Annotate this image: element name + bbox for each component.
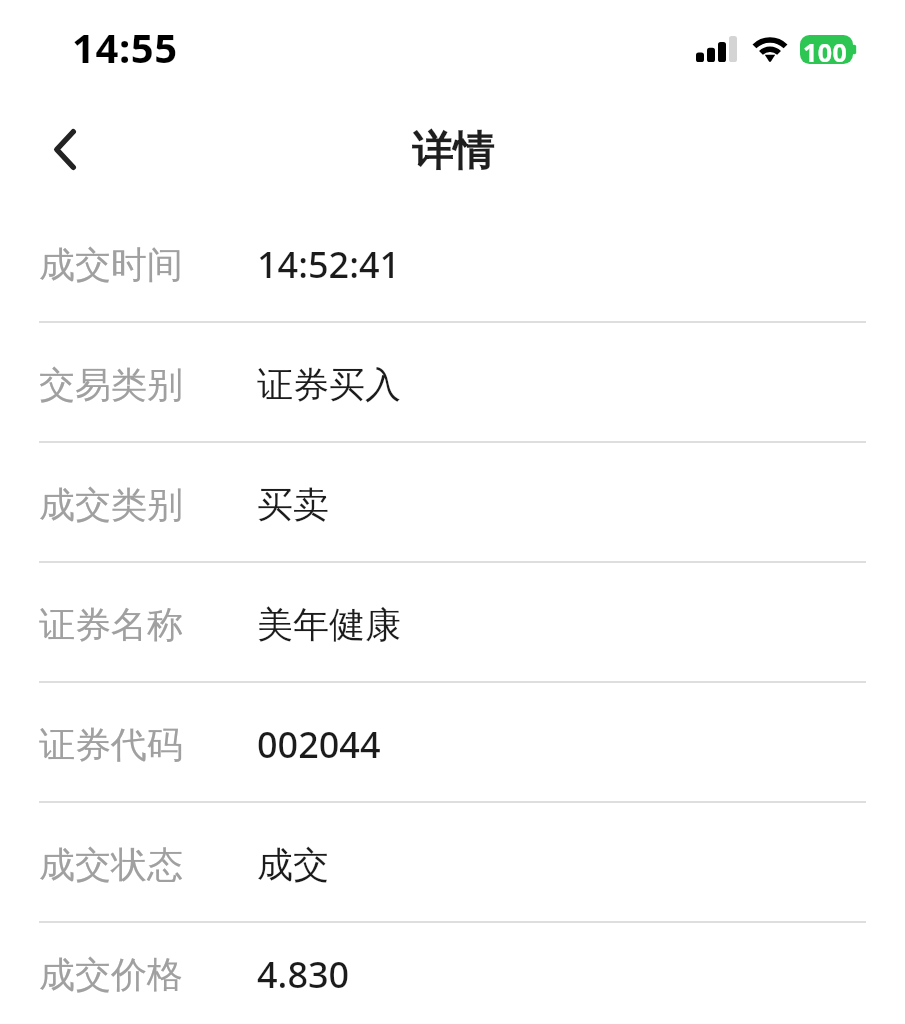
button[interactable]: 成交时间 [0,203,905,323]
staticText: 证券买入 [257,362,401,407]
staticText: 成交 [257,842,329,887]
staticText: 证券代码 [39,722,183,767]
button[interactable]: 证券代码 [0,683,905,803]
staticText: 4.830 [257,950,350,999]
button[interactable]: 证券名称 [0,563,905,683]
staticText: 成交时间 [39,242,183,287]
staticText: 成交价格 [39,952,183,997]
button[interactable]: 成交价格 [0,923,905,1024]
staticText: 100 [803,35,848,64]
staticText: 交易类别 [39,362,183,407]
button[interactable]: 交易类别 [0,323,905,443]
staticText: 成交类别 [39,482,183,527]
staticText: 14:55 [72,20,178,74]
staticText: 002044 [257,720,381,769]
button[interactable]: 成交类别 [0,443,905,563]
staticText: 证券名称 [39,602,183,647]
button[interactable]: 成交状态 [0,803,905,923]
staticText: 成交状态 [39,842,183,887]
staticText: 美年健康 [257,602,401,647]
staticText: 详情 [412,126,494,178]
button[interactable]: Back [27,112,103,190]
staticText: 买卖 [257,482,329,527]
staticText: 14:52:41 [257,240,401,289]
